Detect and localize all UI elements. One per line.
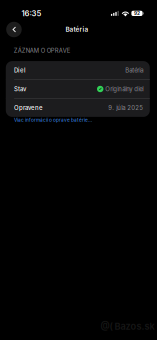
staticText: Diel xyxy=(14,67,26,74)
staticText: Batéria xyxy=(66,26,89,33)
button[interactable]: Back xyxy=(6,22,22,37)
staticText: Batéria xyxy=(125,67,143,74)
button[interactable]: Diel xyxy=(6,61,150,79)
staticText: @( Bazos.sk xyxy=(100,321,154,332)
button[interactable]: Viac informácií o oprave batérie… xyxy=(14,116,142,124)
button[interactable]: Stav xyxy=(6,80,150,98)
staticText: 9. júla 2025 xyxy=(108,104,143,111)
button[interactable]: Opravené xyxy=(6,99,150,117)
staticText: 16:35 xyxy=(21,9,41,18)
staticText: ZÁZNAM O OPRAVE xyxy=(14,47,71,54)
staticText: Stav xyxy=(14,85,26,93)
staticText: Originálny diel xyxy=(105,85,143,93)
staticText: Viac informácií o oprave batérie… xyxy=(14,117,92,123)
staticText: Opravené xyxy=(14,104,43,111)
staticText: 92 xyxy=(134,10,140,16)
